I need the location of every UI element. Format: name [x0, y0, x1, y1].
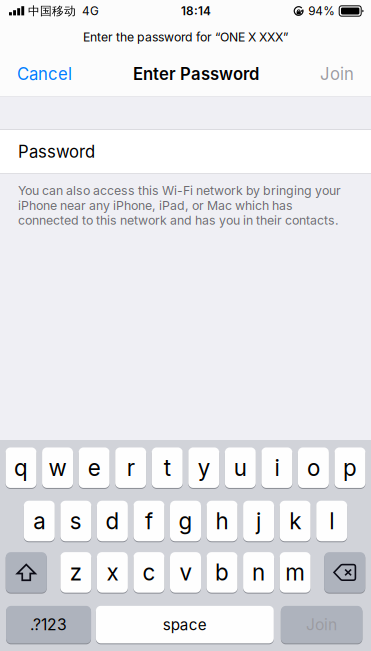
staticText: Join: [320, 64, 354, 84]
staticText: space: [163, 615, 207, 634]
staticText: n: [252, 559, 265, 586]
button[interactable]: x: [97, 552, 128, 593]
button[interactable]: m: [280, 552, 311, 593]
button[interactable]: y: [188, 447, 219, 488]
staticText: v: [179, 559, 191, 586]
staticText: a: [33, 507, 45, 535]
button[interactable]: v: [170, 552, 201, 593]
staticText: m: [285, 559, 305, 586]
staticText: t: [164, 454, 171, 481]
button[interactable]: g: [170, 500, 201, 542]
staticText: u: [234, 454, 247, 481]
staticText: h: [216, 507, 229, 535]
staticText: 18:14: [181, 4, 211, 18]
button[interactable]: z: [60, 552, 91, 593]
staticText: .?123: [30, 615, 67, 634]
staticText: e: [88, 454, 101, 481]
button[interactable]: c: [133, 552, 164, 593]
staticText: k: [289, 507, 301, 535]
button[interactable]: r: [115, 447, 146, 488]
staticText: p: [343, 454, 357, 481]
staticText: 中国移动: [28, 4, 76, 18]
staticText: Password: [18, 142, 95, 162]
button[interactable]: e: [79, 447, 110, 488]
button[interactable]: Join: [309, 52, 371, 96]
staticText: x: [106, 559, 118, 586]
button[interactable]: p: [334, 447, 365, 488]
staticText: b: [215, 559, 229, 586]
button[interactable]: Cancel: [0, 52, 83, 96]
button[interactable]: b: [206, 552, 237, 593]
staticText: o: [307, 454, 320, 481]
button[interactable]: s: [60, 500, 91, 542]
button[interactable]: Delete: [324, 552, 365, 593]
staticText: r: [127, 454, 135, 481]
button[interactable]: d: [97, 500, 128, 542]
staticText: q: [14, 454, 28, 481]
button[interactable]: l: [316, 500, 347, 542]
button[interactable]: .?123: [6, 605, 91, 644]
staticText: Join: [306, 615, 337, 634]
staticText: i: [274, 454, 279, 481]
staticText: y: [198, 454, 210, 481]
button[interactable]: space: [96, 605, 274, 644]
staticText: z: [70, 559, 82, 586]
staticText: d: [105, 507, 119, 535]
button[interactable]: f: [133, 500, 164, 542]
button[interactable]: Join: [281, 605, 362, 644]
button[interactable]: j: [243, 500, 274, 542]
button[interactable]: t: [152, 447, 183, 488]
staticText: g: [178, 507, 192, 535]
staticText: l: [329, 507, 334, 535]
button[interactable]: i: [261, 447, 292, 488]
staticText: 94%: [308, 4, 335, 18]
staticText: s: [70, 507, 82, 535]
button[interactable]: k: [280, 500, 311, 542]
staticText: 4G: [82, 4, 99, 18]
button[interactable]: w: [42, 447, 73, 488]
staticText: f: [145, 507, 153, 535]
button[interactable]: a: [24, 500, 55, 542]
button[interactable]: q: [5, 447, 36, 488]
staticText: Cancel: [17, 64, 72, 84]
button[interactable]: n: [243, 552, 274, 593]
button[interactable]: u: [225, 447, 256, 488]
staticText: You can also access this Wi-Fi network b…: [18, 183, 341, 228]
staticText: Enter Password: [133, 64, 259, 84]
button[interactable]: o: [298, 447, 329, 488]
staticText: Enter the password for “ONE X XXX”: [83, 30, 288, 44]
button[interactable]: Shift: [6, 552, 47, 593]
staticText: j: [256, 507, 261, 535]
staticText: c: [142, 559, 155, 586]
button[interactable]: h: [207, 500, 238, 542]
staticText: w: [49, 454, 67, 481]
